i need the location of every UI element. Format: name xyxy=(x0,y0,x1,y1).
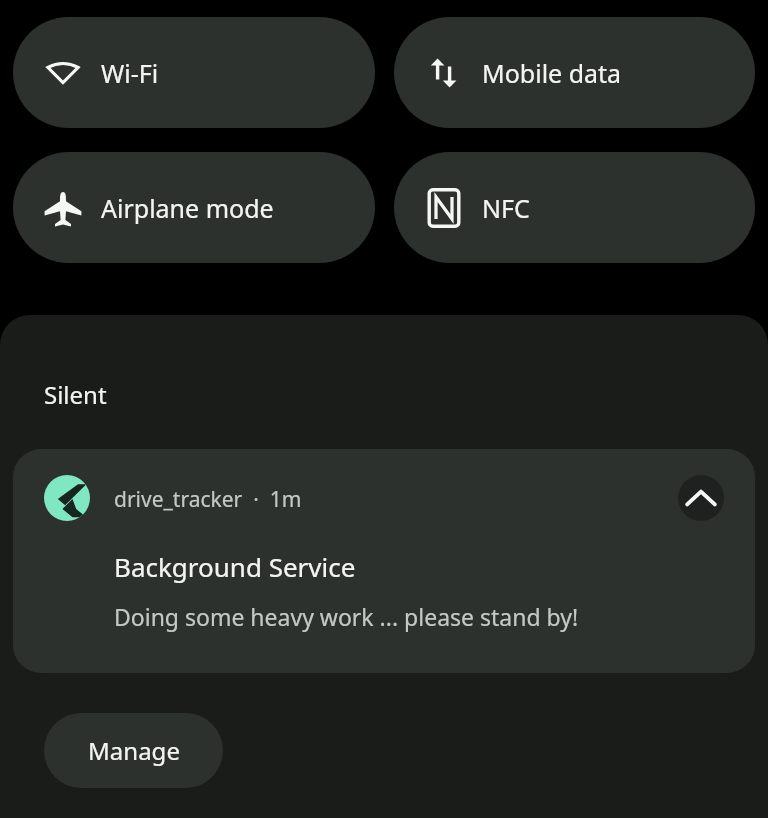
staticText: Mobile data xyxy=(482,56,622,90)
button[interactable]: Manage xyxy=(44,713,223,788)
button[interactable]: Wi-Fi xyxy=(13,17,375,128)
staticText: Background Service xyxy=(114,549,356,584)
button[interactable]: Airplane mode xyxy=(13,152,375,263)
staticText: Doing some heavy work ... please stand b… xyxy=(114,601,579,632)
staticText: Silent xyxy=(44,378,107,411)
staticText: Airplane mode xyxy=(101,191,274,225)
staticText: drive_tracker · 1m xyxy=(114,485,302,514)
staticText: Wi-Fi xyxy=(101,56,159,90)
button[interactable]: NFC xyxy=(394,152,755,263)
button[interactable]: drive_tracker · 1m xyxy=(13,449,755,673)
staticText: Manage xyxy=(88,734,180,767)
staticText: NFC xyxy=(482,191,530,225)
button[interactable]: Collapse notification xyxy=(678,475,724,521)
button[interactable]: Mobile data xyxy=(394,17,755,128)
